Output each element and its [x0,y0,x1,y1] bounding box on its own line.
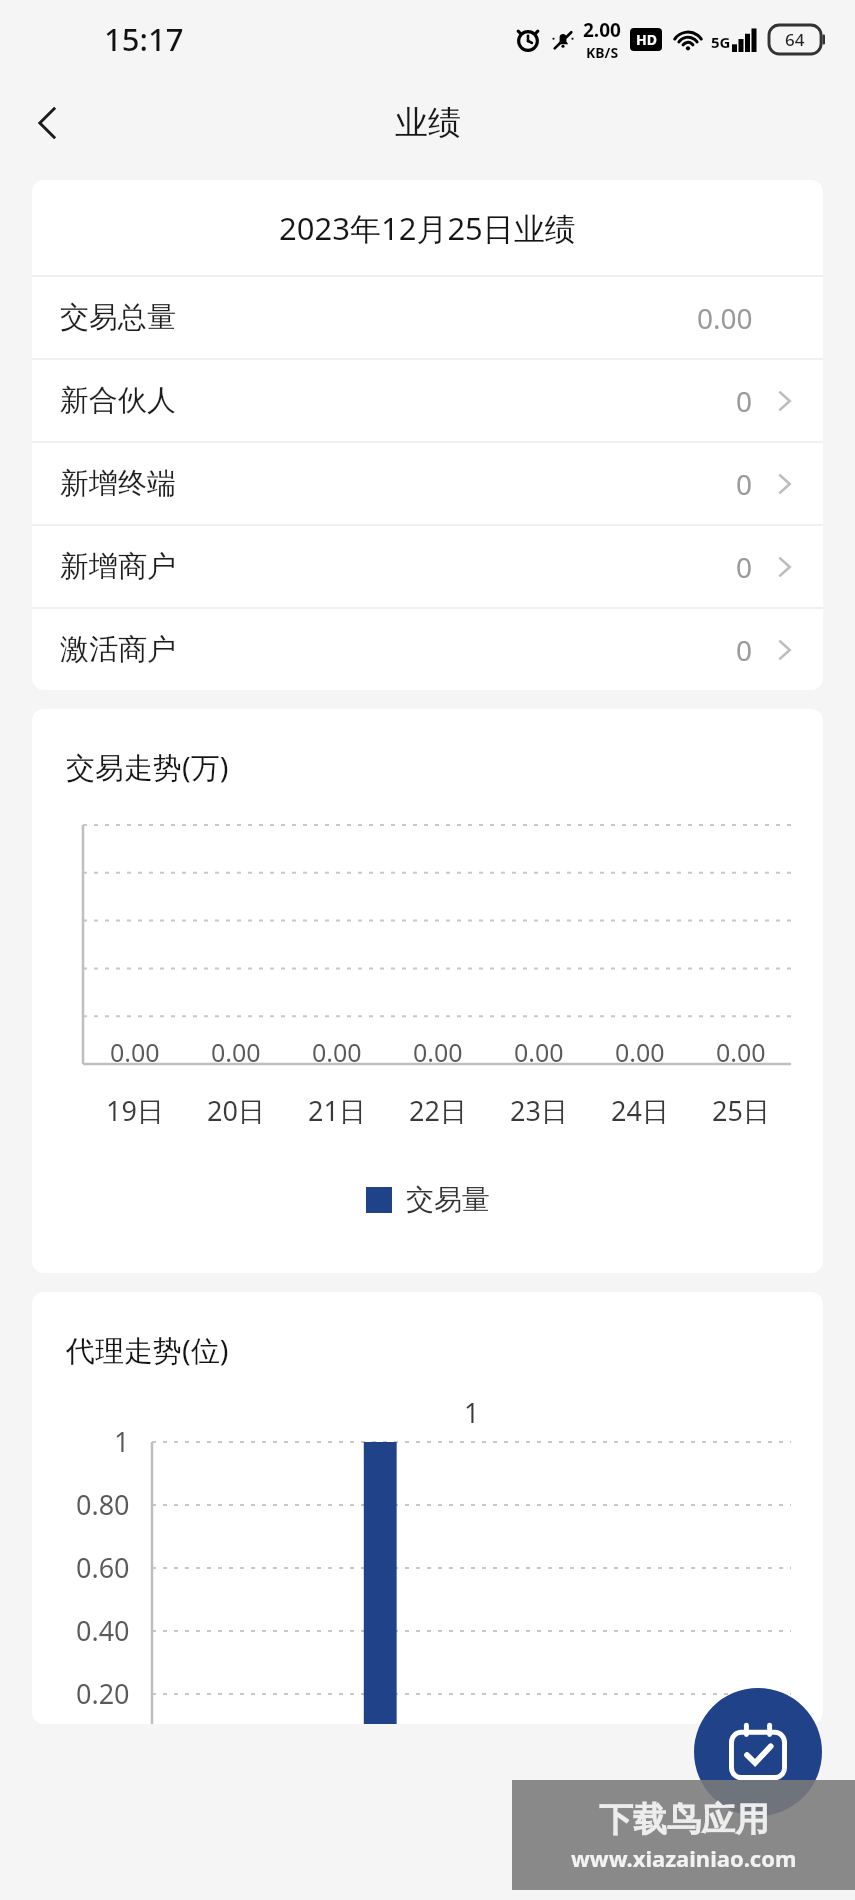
staticText: 0.20 [76,1675,130,1712]
staticText: 交易量 [406,1182,490,1217]
staticText: 22日 [409,1092,467,1129]
staticText: 交易走势(万) [66,747,229,787]
staticText: 19日 [106,1092,164,1129]
staticText: 23日 [510,1092,568,1129]
staticText: 2023年12月25日业绩 [279,207,576,249]
staticText: 业绩 [395,102,461,144]
button[interactable]: 交易总量 [32,277,823,358]
staticText: 2.00 [583,17,621,43]
staticText: 新合伙人 [60,382,176,419]
staticText: 1 [114,1423,130,1460]
button[interactable]: 新增商户 [32,526,823,607]
staticText: 25日 [712,1092,770,1129]
staticText: 0.00 [110,1035,160,1069]
staticText: 15:17 [104,18,184,60]
staticText: www.xiazainiao.com [571,1843,797,1873]
staticText: 5G [711,32,731,52]
staticText: 代理走势(位) [66,1330,229,1370]
staticText: 0.00 [716,1035,766,1069]
button[interactable]: 激活商户 [32,609,823,690]
button[interactable]: 返回 [16,91,80,155]
staticText: 交易总量 [60,299,176,336]
button[interactable]: 新合伙人 [32,360,823,441]
staticText: 24日 [611,1092,669,1129]
staticText: 0 [736,548,753,586]
staticText: 0.00 [413,1035,463,1069]
staticText: 新增终端 [60,465,176,502]
staticText: 0.60 [76,1549,130,1586]
staticText: 0 [736,382,753,420]
staticText: 激活商户 [60,631,176,668]
staticText: 0.00 [312,1035,362,1069]
staticText: 0 [736,631,753,669]
staticText: 0.80 [76,1486,130,1523]
button[interactable]: 新增终端 [32,443,823,524]
staticText: 0 [736,465,753,503]
button[interactable]: 选择日期 [694,1688,822,1816]
staticText: 20日 [207,1092,265,1129]
staticText: 0.00 [211,1035,261,1069]
staticText: KB/S [586,43,619,62]
staticText: 新增商户 [60,548,176,585]
staticText: 下载鸟应用 [599,1798,769,1841]
staticText: 21日 [308,1092,366,1129]
staticText: 0.00 [514,1035,564,1069]
staticText: 64 [785,28,805,51]
staticText: 1 [464,1394,480,1431]
staticText: HD [636,30,657,49]
staticText: 0.00 [615,1035,665,1069]
staticText: 0.00 [697,299,753,337]
staticText: 0.40 [76,1612,130,1649]
